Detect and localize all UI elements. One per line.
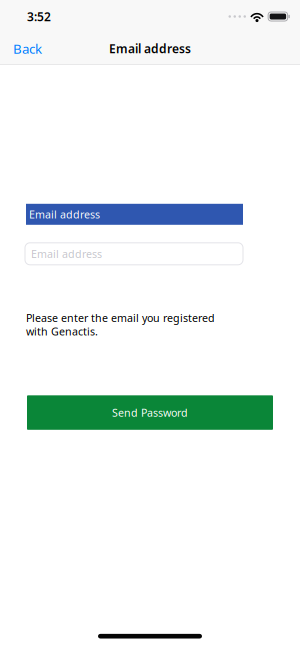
staticText: Back xyxy=(13,40,42,57)
staticText: 3:52 xyxy=(27,8,51,24)
staticText: with Genactis. xyxy=(26,324,98,338)
staticText: Email address xyxy=(109,40,191,56)
staticText: Send Password xyxy=(112,405,188,420)
staticText: Email address xyxy=(31,247,102,261)
button[interactable]: Send Password xyxy=(27,395,273,430)
button[interactable]: Back xyxy=(0,40,42,57)
button[interactable]: Email address xyxy=(25,243,243,265)
staticText: Please enter the email you registered xyxy=(26,311,215,325)
staticText: Email address xyxy=(29,207,100,221)
